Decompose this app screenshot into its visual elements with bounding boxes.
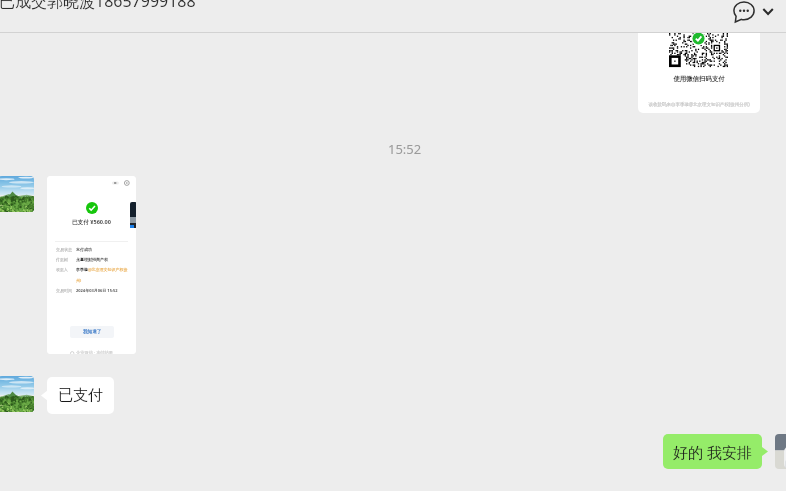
staticText: 2024年03月06日 15:52 xyxy=(76,288,118,293)
staticText: 已支付 xyxy=(58,386,103,405)
button[interactable]: My avatar xyxy=(775,434,786,469)
button[interactable]: Avatar xyxy=(0,176,34,212)
button[interactable]: Expand xyxy=(758,0,777,23)
staticText: 州) xyxy=(76,278,82,283)
button[interactable]: 我知道了 xyxy=(70,326,114,338)
staticText: 使用微信扫码支付 xyxy=(638,75,760,83)
staticText: 支付成功 xyxy=(76,247,92,252)
staticText: 收款人 xyxy=(56,267,68,272)
staticText: 已成交郭晓波18657999188 xyxy=(0,0,196,12)
button[interactable]: Avatar xyxy=(0,376,34,412)
staticText: 企业微信 · 支付结果 xyxy=(75,350,113,354)
button[interactable]: 已支付 xyxy=(47,377,114,414)
staticText: 交易状态 xyxy=(56,247,72,252)
staticText: 15:52 xyxy=(388,140,422,158)
staticText: 交易时间 xyxy=(56,288,72,293)
staticText: 已支付 ¥560.00 xyxy=(47,218,136,226)
staticText: @北京理文知识产权徐 xyxy=(88,267,128,272)
staticText: 付款树 xyxy=(56,257,68,262)
staticText: 我知道了 xyxy=(83,329,102,335)
button[interactable]: 使用微信扫码支付 xyxy=(638,0,760,113)
staticText: 好的 我安排 xyxy=(673,442,752,462)
staticText: 李季璇 xyxy=(76,267,88,272)
button[interactable]: 已支付 ¥560.00 xyxy=(47,176,136,354)
staticText: 永赢理财招商产权 xyxy=(76,257,108,262)
staticText: 该收款码来自李季璇@北京理文知识产权(徐州分所) xyxy=(638,101,760,107)
button[interactable]: 好的 我安排 xyxy=(663,434,762,469)
button[interactable]: Messages xyxy=(732,0,756,24)
